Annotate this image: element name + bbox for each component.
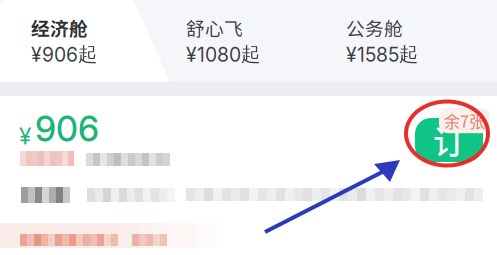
staticText: 订	[433, 117, 465, 163]
staticText: ¥906起	[31, 42, 97, 66]
staticText: ¥	[19, 122, 31, 150]
staticText: 公务舱	[346, 14, 403, 41]
button[interactable]: 订	[415, 113, 483, 167]
button[interactable]: 经济舱	[31, 14, 186, 82]
staticText: 舒心飞	[186, 14, 243, 41]
button[interactable]: 舒心飞	[186, 14, 346, 82]
staticText: 906	[35, 108, 99, 150]
staticText: 余7张	[444, 109, 485, 132]
staticText: 经济舱	[31, 14, 88, 41]
staticText: ¥1585起	[346, 42, 418, 66]
button[interactable]: 公务舱	[346, 14, 497, 82]
staticText: ¥1080起	[186, 42, 260, 66]
